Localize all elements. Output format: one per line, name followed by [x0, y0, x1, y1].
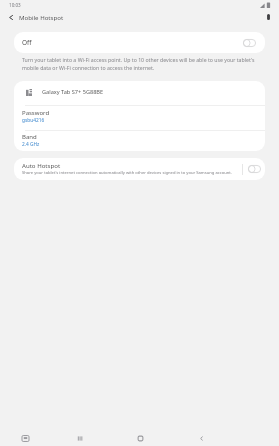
- button[interactable]: Toggle: [243, 165, 265, 173]
- button[interactable]: Auto Hotspot: [14, 162, 242, 177]
- button[interactable]: Password: [14, 106, 265, 130]
- button[interactable]: Toggle: [243, 39, 256, 47]
- staticText: gsbu4216: [22, 117, 45, 124]
- staticText: Mobile Hotspot: [19, 13, 64, 21]
- staticText: Password: [22, 109, 50, 117]
- button[interactable]: Screenshot: [14, 427, 36, 446]
- button[interactable]: Home: [129, 427, 151, 446]
- button[interactable]: Band: [14, 131, 265, 151]
- staticText: Auto Hotspot: [22, 161, 61, 169]
- staticText: Share your tablet's internet connection …: [22, 170, 232, 176]
- button[interactable]: More options: [261, 10, 275, 24]
- button[interactable]: Back: [2, 10, 20, 24]
- button[interactable]: Back: [190, 427, 212, 446]
- staticText: Band: [22, 133, 37, 141]
- button[interactable]: Toggle: [248, 165, 261, 173]
- staticText: 2.4 GHz: [22, 141, 40, 148]
- staticText: Off: [22, 38, 32, 47]
- button[interactable]: Off: [14, 32, 265, 53]
- button[interactable]: Recents: [68, 427, 90, 446]
- button[interactable]: Galaxy Tab S7+ 5G88BE: [14, 81, 265, 105]
- staticText: Turn your tablet into a Wi-Fi access poi…: [22, 56, 257, 71]
- staticText: 10:03: [9, 2, 21, 8]
- staticText: Galaxy Tab S7+ 5G88BE: [42, 88, 104, 96]
